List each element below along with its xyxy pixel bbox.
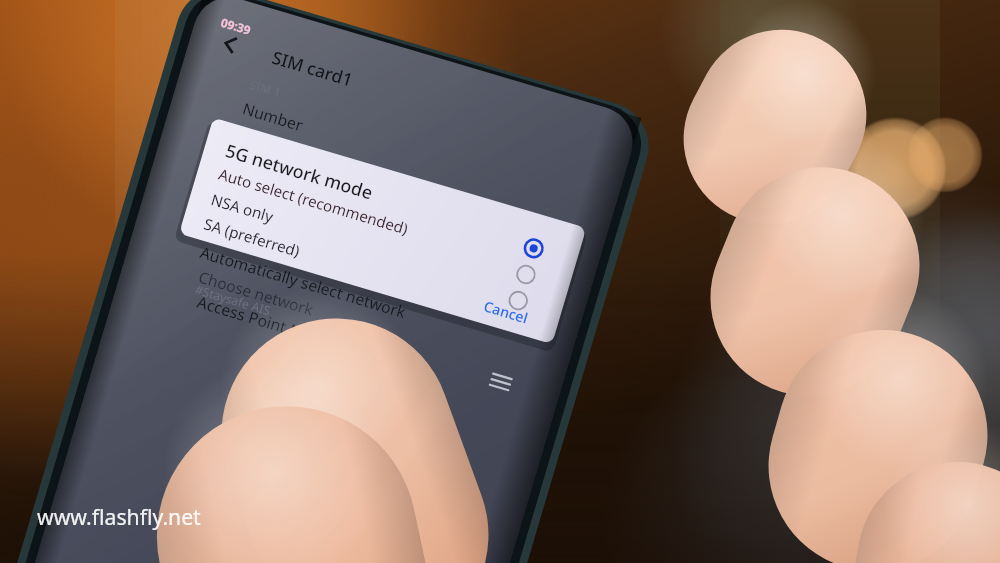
button[interactable] [0, 0, 1000, 563]
other: 5G network mode dialog on phone [0, 0, 1000, 563]
